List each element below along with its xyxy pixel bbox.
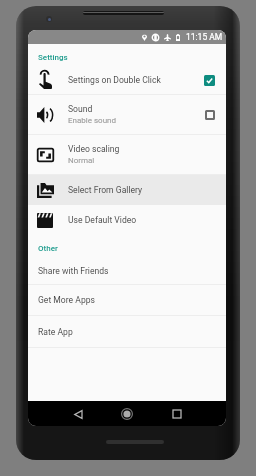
staticText: 11:15 AM: [186, 32, 223, 42]
button[interactable]: Video scaling: [28, 135, 226, 174]
button[interactable]: Share with Friends: [28, 257, 226, 284]
staticText: Get More Apps: [38, 295, 95, 305]
staticText: Rate App: [38, 327, 73, 337]
button[interactable]: Rate App: [28, 316, 226, 347]
button[interactable]: Sound: [28, 95, 226, 134]
staticText: Select From Gallery: [68, 185, 143, 195]
button[interactable]: Get More Apps: [28, 285, 226, 315]
staticText: Settings: [38, 53, 68, 62]
staticText: Sound: [68, 104, 93, 114]
button[interactable]: Select From Gallery: [28, 175, 226, 205]
button[interactable]: Recent apps: [165, 402, 189, 426]
staticText: Enable sound: [68, 116, 117, 125]
staticText: Other: [38, 244, 58, 253]
button[interactable]: Settings on Double Click: [28, 66, 226, 94]
staticText: Use Default Video: [68, 215, 137, 225]
staticText: Video scaling: [68, 144, 120, 154]
staticText: Normal: [68, 156, 95, 165]
staticText: Share with Friends: [38, 266, 109, 276]
button[interactable]: Back: [66, 402, 90, 426]
button[interactable]: Home: [115, 402, 139, 426]
staticText: Settings on Double Click: [68, 75, 161, 85]
button[interactable]: Use Default Video: [28, 205, 226, 235]
